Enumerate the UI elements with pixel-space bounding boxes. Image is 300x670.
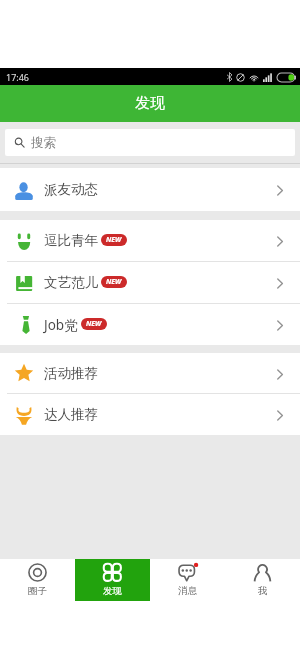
staticText: 文艺范儿 — [44, 274, 98, 291]
staticText: 达人推荐 — [44, 406, 98, 423]
staticText: 17:46 — [6, 71, 30, 83]
staticText: NEW — [106, 235, 122, 245]
staticText: 派友动态 — [44, 181, 98, 198]
staticText: NEW — [86, 319, 102, 329]
button[interactable]: 圈子 — [0, 559, 75, 601]
staticText: 逗比青年 — [44, 232, 98, 249]
button[interactable]: 达人推荐 — [0, 394, 300, 435]
staticText: 发现 — [103, 585, 122, 597]
button[interactable]: 活动推荐 — [0, 353, 300, 393]
staticText: 发现 — [135, 94, 165, 113]
button[interactable]: 派友动态 — [0, 168, 300, 211]
staticText: 搜索 — [31, 135, 56, 151]
button[interactable]: Job党 — [0, 304, 300, 345]
button[interactable]: 逗比青年 — [0, 220, 300, 261]
staticText: Job党 — [44, 316, 78, 334]
button[interactable]: 发现 — [75, 559, 150, 601]
button[interactable]: 文艺范儿 — [0, 262, 300, 303]
staticText: NEW — [106, 277, 122, 287]
staticText: 圈子 — [28, 585, 47, 597]
button[interactable]: 消息 — [150, 559, 225, 601]
staticText: 我 — [258, 585, 268, 597]
staticText: 活动推荐 — [44, 365, 98, 382]
staticText: 消息 — [178, 585, 197, 597]
button[interactable]: 搜索 — [5, 129, 295, 156]
button[interactable]: 我 — [225, 559, 300, 601]
